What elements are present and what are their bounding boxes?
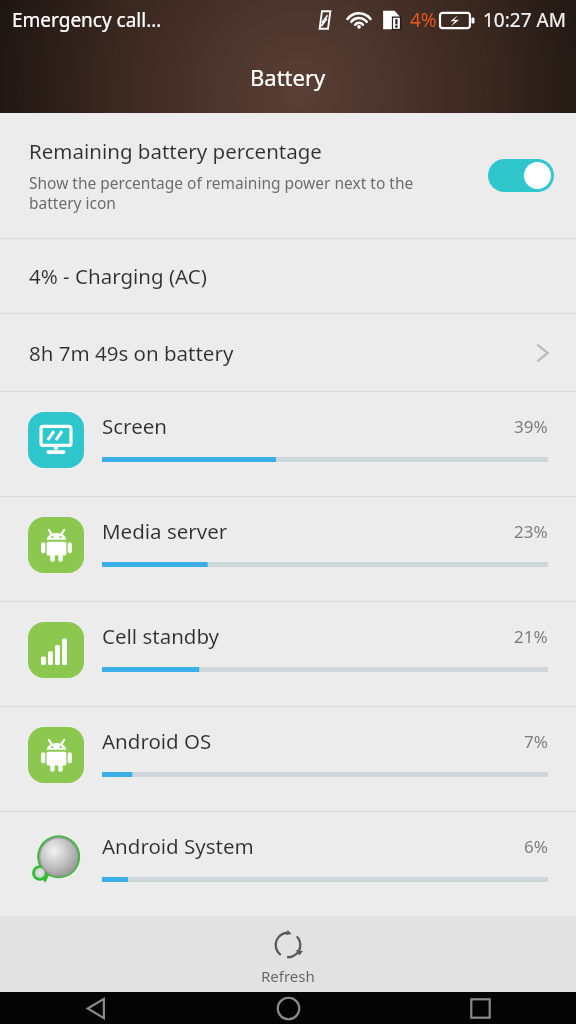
button[interactable]: Cell standby: [0, 602, 576, 706]
staticText: 21%: [514, 625, 548, 648]
staticText: 6%: [524, 835, 548, 858]
button[interactable]: Refresh: [0, 916, 576, 992]
staticText: Remaining battery percentage: [29, 137, 322, 165]
staticText: 23%: [514, 520, 548, 543]
button[interactable]: Remaining battery percentage: [0, 113, 576, 238]
button[interactable]: Screen: [0, 392, 576, 496]
staticText: 10:27 AM: [483, 7, 566, 33]
staticText: 8h 7m 49s on battery: [29, 339, 234, 367]
staticText: 7%: [524, 730, 548, 753]
staticText: Emergency call…: [12, 7, 162, 33]
staticText: Android System: [102, 832, 254, 860]
staticText: 39%: [514, 415, 548, 438]
staticText: 4%: [410, 7, 437, 33]
button[interactable]: Home: [192, 992, 384, 1024]
button[interactable]: Back: [0, 992, 192, 1024]
staticText: Android OS: [102, 727, 212, 755]
button[interactable]: 4% - Charging (AC): [0, 239, 576, 313]
staticText: Refresh: [261, 966, 315, 986]
staticText: Media server: [102, 517, 228, 545]
button[interactable]: 8h 7m 49s on battery: [0, 314, 576, 391]
button[interactable]: Android System: [0, 812, 576, 916]
button[interactable]: Media server: [0, 497, 576, 601]
staticText: Screen: [102, 412, 167, 440]
staticText: Battery: [250, 62, 326, 92]
button[interactable]: Toggle remaining battery percentage: [488, 159, 554, 192]
staticText: Show the percentage of remaining power n…: [29, 172, 414, 214]
staticText: 4% - Charging (AC): [29, 262, 207, 290]
staticText: Cell standby: [102, 622, 220, 650]
button[interactable]: Android OS: [0, 707, 576, 811]
button[interactable]: Recent apps: [384, 992, 576, 1024]
